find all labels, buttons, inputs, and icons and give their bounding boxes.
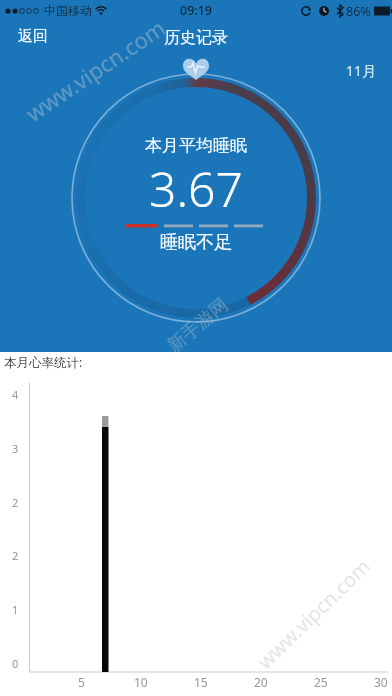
staticText: www.vipcn.com (19, 12, 171, 128)
staticText: 20 (254, 674, 268, 690)
staticText: 睡眠不足 (160, 231, 232, 254)
staticText: 10 (134, 674, 148, 690)
staticText: 25 (314, 674, 328, 690)
staticText: 09:19 (180, 2, 213, 19)
button[interactable]: 11月 (346, 61, 377, 80)
staticText: 返回 (18, 27, 48, 46)
button[interactable]: 返回 (18, 27, 48, 46)
staticText: 30 (374, 674, 388, 690)
staticText: 3.67 (149, 156, 243, 221)
staticText: 2 (12, 495, 19, 510)
staticText: 历史记录 (164, 28, 228, 48)
staticText: 86% (346, 3, 371, 20)
staticText: 5 (78, 674, 85, 690)
staticText: 本月平均睡眠 (145, 135, 247, 156)
staticText: 0 (12, 656, 19, 671)
staticText: 3 (12, 441, 19, 456)
staticText: 11月 (346, 61, 377, 80)
staticText: 中国移动 (44, 3, 92, 18)
staticText: 新手游网 (163, 294, 233, 357)
staticText: www.vipcn.com (251, 552, 377, 675)
staticText: 2 (12, 548, 19, 563)
staticText: 4 (12, 387, 19, 402)
staticText: 本月心率统计: (4, 354, 83, 371)
staticText: 15 (194, 674, 208, 690)
staticText: 1 (12, 602, 19, 617)
